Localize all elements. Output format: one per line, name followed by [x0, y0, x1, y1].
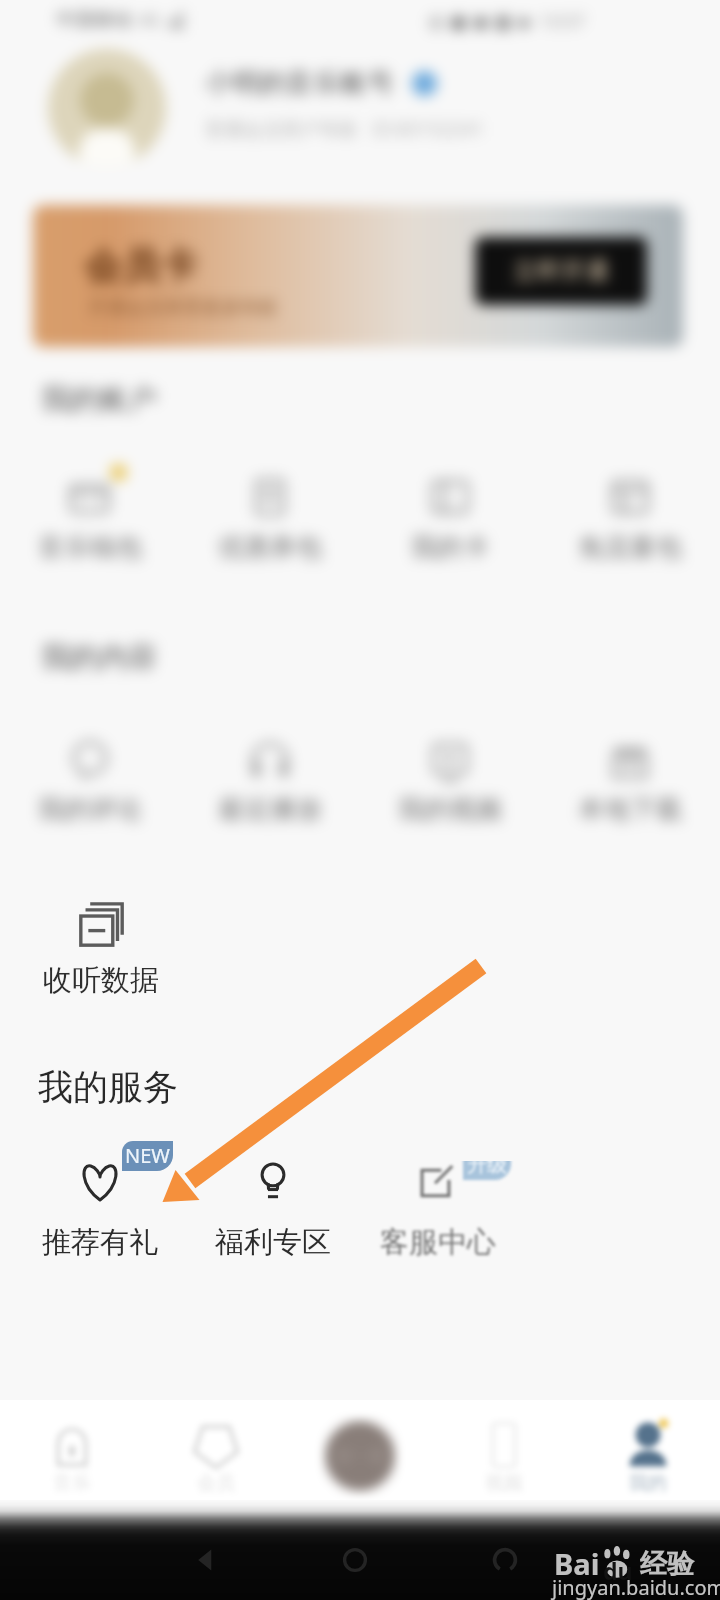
staticText: 福利专区 — [215, 1224, 331, 1261]
staticText: 优惠券包 — [218, 531, 322, 564]
staticText: du — [603, 1555, 633, 1585]
button[interactable]: 视频 — [432, 1400, 576, 1524]
staticText: 开通会员享受更多特权 — [88, 296, 278, 320]
staticText: 立即开通 — [513, 256, 609, 286]
staticText: ◎ ▣ ◉ ▦ ◈ — [428, 8, 532, 34]
button[interactable]: 客服中心 — [351, 1161, 524, 1261]
staticText: 我的卡 — [411, 531, 489, 564]
staticText: 我的评论 — [38, 793, 142, 826]
button[interactable]: 会员 — [144, 1400, 288, 1524]
button[interactable]: 立即开通 — [475, 237, 647, 305]
staticText: 收听数据 — [43, 962, 159, 999]
staticText: 中国移动 — [56, 8, 132, 32]
staticText: ▲▎ — [168, 11, 193, 30]
staticText: 会员卡 — [84, 242, 198, 290]
staticText: 升级 — [467, 1161, 507, 1177]
button[interactable]: 本地下载 — [540, 733, 720, 826]
staticText: 免流量包 — [578, 531, 682, 564]
button[interactable]: 优惠券包 — [180, 470, 360, 564]
button[interactable]: 收听数据 — [41, 901, 161, 999]
button[interactable]: 最近播放 — [180, 733, 360, 826]
button[interactable]: 音乐钱包 — [0, 470, 180, 564]
staticText: 4G — [139, 9, 160, 31]
staticText: 我的内容 — [41, 639, 157, 676]
button[interactable] — [288, 1400, 432, 1524]
button[interactable]: 免流量包 — [540, 470, 720, 564]
staticText: 普通会员用户等级 ID:83152241 — [205, 116, 485, 142]
button[interactable]: 我的视频 — [360, 733, 540, 826]
staticText: 13:57 — [539, 9, 586, 34]
button[interactable]: 推荐有礼 — [13, 1161, 186, 1261]
button[interactable]: 福利专区 — [186, 1161, 359, 1261]
staticText: 小明的音乐账号 — [205, 66, 394, 100]
button[interactable]: 我的评论 — [0, 733, 180, 826]
staticText: 经验 — [640, 1547, 694, 1581]
button[interactable]: Recents — [475, 1530, 535, 1590]
button[interactable]: 我的 — [576, 1400, 720, 1524]
staticText: 我的 — [629, 1471, 667, 1495]
button[interactable]: Home — [325, 1530, 385, 1590]
button[interactable]: Avatar — [48, 49, 166, 167]
staticText: 音乐钱包 — [38, 531, 142, 564]
staticText: 本地下载 — [578, 793, 682, 826]
staticText: 我的账户 — [41, 381, 157, 418]
button[interactable]: 会员卡 — [33, 205, 683, 347]
staticText: 推荐有礼 — [42, 1224, 158, 1261]
staticText: 视频 — [485, 1471, 523, 1495]
button[interactable]: Back — [175, 1530, 235, 1590]
staticText: 最近播放 — [218, 793, 322, 826]
button[interactable]: 音乐 — [0, 1400, 144, 1524]
staticText: 客服中心 — [380, 1224, 496, 1261]
button[interactable]: 我的卡 — [360, 470, 540, 564]
staticText: 我的服务 — [38, 1065, 178, 1109]
button[interactable]: Play — [325, 1421, 395, 1491]
staticText: jingyan.baidu.com — [552, 1574, 720, 1600]
staticText: Bai — [554, 1544, 600, 1583]
staticText: 我的视频 — [398, 793, 502, 826]
staticText: NEW — [125, 1142, 170, 1169]
